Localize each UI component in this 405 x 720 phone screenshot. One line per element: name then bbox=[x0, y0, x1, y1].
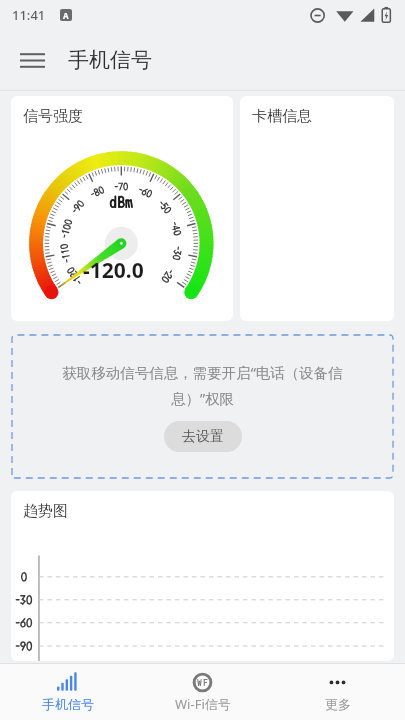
staticText: A bbox=[63, 10, 69, 21]
staticText: 趋势图 bbox=[23, 502, 68, 521]
button[interactable]: 去设置 bbox=[164, 421, 242, 452]
staticText: 手机信号 bbox=[42, 696, 94, 712]
staticText: 11:41 bbox=[12, 6, 46, 24]
staticText: -120.0 bbox=[83, 256, 144, 285]
button[interactable]: 更多 bbox=[270, 664, 405, 720]
button[interactable]: Menu bbox=[9, 37, 55, 83]
button[interactable]: 卡槽信息 bbox=[240, 96, 394, 321]
staticText: Wi-Fi信号 bbox=[175, 695, 231, 713]
button[interactable]: 获取移动信号信息，需要开启“电话（设备信 息）”权限 bbox=[11, 334, 394, 479]
button[interactable]: 趋势图 bbox=[11, 491, 394, 661]
staticText: 卡槽信息 bbox=[252, 107, 312, 126]
staticText: 手机信号 bbox=[68, 47, 152, 73]
staticText: 获取移动信号信息，需要开启“电话（设备信 息）”权限 bbox=[62, 362, 343, 408]
button[interactable]: 手机信号 bbox=[0, 664, 135, 720]
staticText: 去设置 bbox=[182, 428, 224, 446]
button[interactable]: 信号强度 bbox=[11, 96, 233, 321]
button[interactable]: Wi-Fi信号 bbox=[135, 664, 270, 720]
staticText: 信号强度 bbox=[23, 107, 83, 126]
staticText: 更多 bbox=[325, 696, 351, 712]
